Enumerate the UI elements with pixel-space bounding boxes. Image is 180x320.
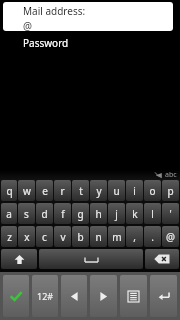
staticText: 12# <box>37 290 54 302</box>
button[interactable]: Shift <box>1 249 37 269</box>
button[interactable]: Mail address: <box>3 2 173 31</box>
staticText: o <box>149 184 156 198</box>
staticText: x <box>24 230 30 244</box>
button[interactable]: . <box>144 226 161 247</box>
staticText: , <box>133 230 136 244</box>
staticText: @ <box>23 19 32 31</box>
staticText: f <box>61 207 65 221</box>
staticText: @ <box>166 230 175 244</box>
button[interactable]: d <box>36 203 53 224</box>
staticText: Mail address: <box>23 4 86 18</box>
staticText: z <box>7 230 12 244</box>
button[interactable]: f <box>54 203 71 224</box>
button[interactable]: i <box>126 180 143 201</box>
button[interactable]: g <box>72 203 89 224</box>
button[interactable]: Right <box>90 275 117 317</box>
button[interactable]: Backspace <box>145 249 179 269</box>
button[interactable]: Space <box>39 249 143 269</box>
staticText: i <box>133 184 136 198</box>
button[interactable]: Enter <box>150 275 177 317</box>
button[interactable]: m <box>108 226 125 247</box>
button[interactable]: y <box>90 180 107 201</box>
staticText: l <box>151 207 154 221</box>
staticText: d <box>41 207 48 221</box>
button[interactable]: a <box>1 203 17 224</box>
button[interactable]: r <box>54 180 71 201</box>
button[interactable]: l <box>144 203 161 224</box>
button[interactable]: j <box>108 203 125 224</box>
button[interactable]: b <box>72 226 89 247</box>
button[interactable]: n <box>90 226 107 247</box>
staticText: . <box>151 230 154 244</box>
button[interactable]: t <box>72 180 89 201</box>
staticText: c <box>42 230 47 244</box>
staticText: w <box>23 184 31 198</box>
button[interactable]: e <box>36 180 53 201</box>
button[interactable]: u <box>108 180 125 201</box>
staticText: abc <box>165 170 177 180</box>
button[interactable]: z <box>1 226 17 247</box>
button[interactable]: Left <box>61 275 87 317</box>
button[interactable]: v <box>54 226 71 247</box>
staticText: j <box>115 207 118 221</box>
button[interactable]: Options <box>120 275 147 317</box>
button[interactable]: c <box>36 226 53 247</box>
staticText: e <box>42 184 48 198</box>
staticText: y <box>96 184 102 198</box>
staticText: s <box>24 207 29 221</box>
staticText: v <box>60 230 66 244</box>
staticText: ' <box>169 207 172 221</box>
button[interactable]: w <box>18 180 35 201</box>
button[interactable]: h <box>90 203 107 224</box>
button[interactable]: ' <box>162 203 179 224</box>
staticText: t <box>79 184 83 198</box>
button[interactable]: , <box>126 226 143 247</box>
button[interactable]: o <box>144 180 161 201</box>
staticText: n <box>95 230 102 244</box>
staticText: a <box>6 207 12 221</box>
button[interactable]: Numbers and symbols <box>32 275 58 317</box>
staticText: k <box>132 207 138 221</box>
staticText: b <box>77 230 84 244</box>
staticText: q <box>6 184 13 198</box>
button[interactable]: s <box>18 203 35 224</box>
staticText: p <box>167 184 174 198</box>
staticText: m <box>112 230 122 244</box>
staticText: u <box>113 184 120 198</box>
staticText: g <box>77 207 84 221</box>
staticText: r <box>60 184 65 198</box>
button[interactable]: OK <box>3 275 29 317</box>
button[interactable]: p <box>162 180 179 201</box>
button[interactable]: q <box>1 180 17 201</box>
staticText: h <box>95 207 102 221</box>
button[interactable]: x <box>18 226 35 247</box>
button[interactable]: Password <box>23 36 69 50</box>
button[interactable]: k <box>126 203 143 224</box>
button[interactable]: @ <box>162 226 179 247</box>
